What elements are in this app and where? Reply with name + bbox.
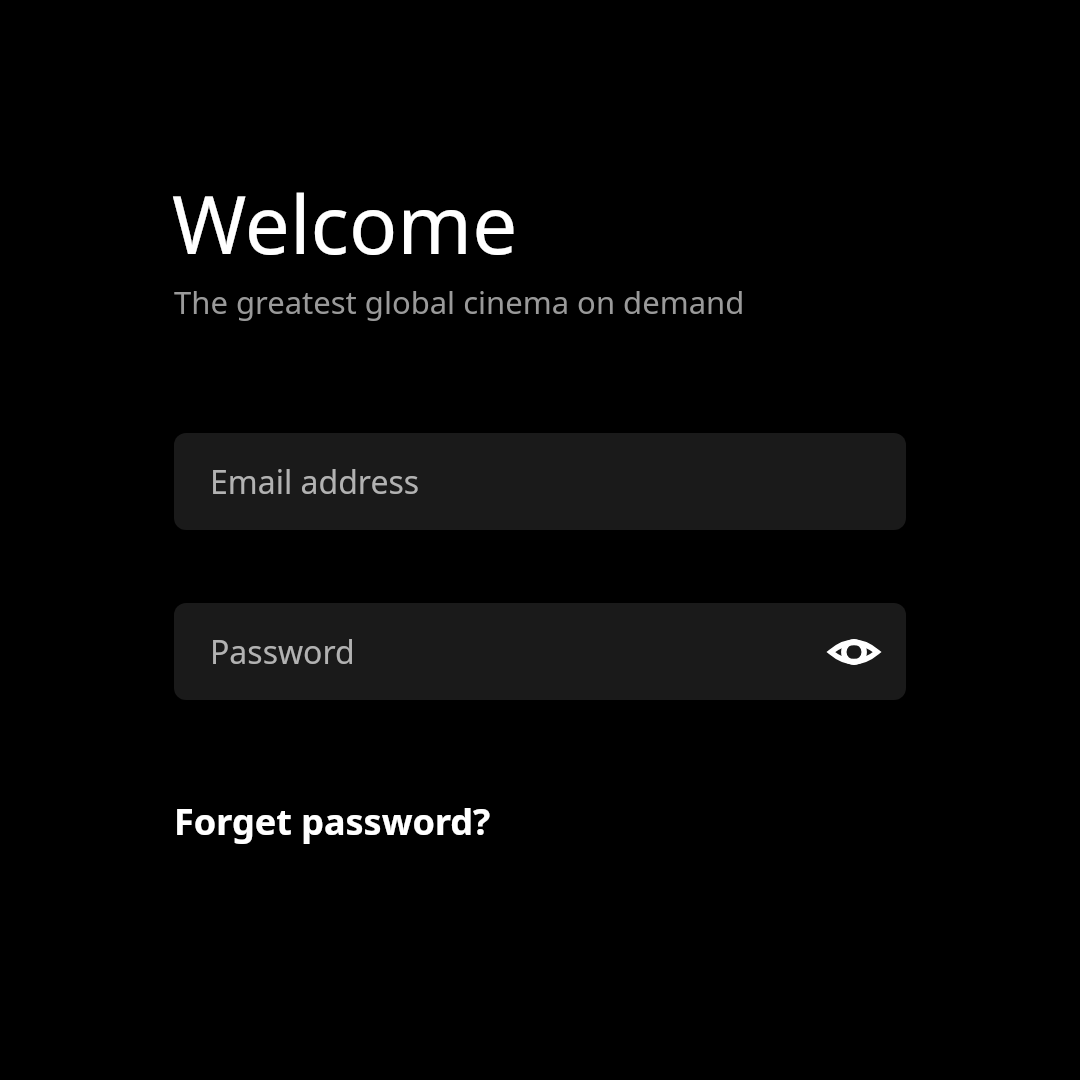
button[interactable]: Forget password? <box>174 797 491 846</box>
staticText: Password <box>210 630 355 674</box>
button[interactable]: Email address <box>174 433 906 530</box>
staticText: Email address <box>210 460 420 504</box>
button[interactable]: Password <box>174 603 906 700</box>
staticText: Forget password? <box>174 797 491 846</box>
button[interactable]: Show password <box>816 614 892 690</box>
staticText: The greatest global cinema on demand <box>174 281 745 323</box>
staticText: Welcome <box>172 168 518 277</box>
